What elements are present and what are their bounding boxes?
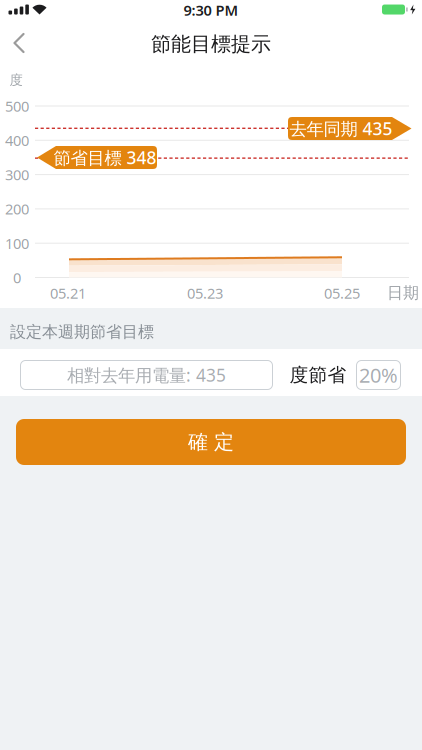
staticText: 300 xyxy=(5,165,29,184)
staticText: 相對去年用電量: 435 xyxy=(67,363,226,386)
staticText: 20% xyxy=(359,362,398,388)
button[interactable]: 確 定 xyxy=(16,419,406,465)
staticText: 確 定 xyxy=(188,430,234,454)
staticText: 05.21 xyxy=(50,283,86,303)
staticText: 500 xyxy=(5,96,29,116)
staticText: 節省目標 348 xyxy=(53,146,156,169)
staticText: 節能目標提示 xyxy=(151,32,271,56)
staticText: 200 xyxy=(5,199,29,219)
staticText: 去年同期 435 xyxy=(289,117,392,140)
staticText: 設定本週期節省目標 xyxy=(10,322,154,342)
staticText: 0 xyxy=(13,268,21,287)
staticText: 05.25 xyxy=(324,283,360,303)
staticText: 400 xyxy=(5,131,29,150)
button[interactable]: Back xyxy=(10,32,32,54)
staticText: 100 xyxy=(5,233,29,253)
staticText: 度節省 xyxy=(289,363,346,386)
staticText: 05.23 xyxy=(187,283,223,303)
staticText: 度 xyxy=(9,72,22,88)
staticText: 9:30 PM xyxy=(183,0,238,20)
staticText: 日期 xyxy=(387,283,419,303)
button[interactable]: 節省百分比 xyxy=(356,360,401,390)
button[interactable]: 相對去年用電量 xyxy=(20,360,273,390)
